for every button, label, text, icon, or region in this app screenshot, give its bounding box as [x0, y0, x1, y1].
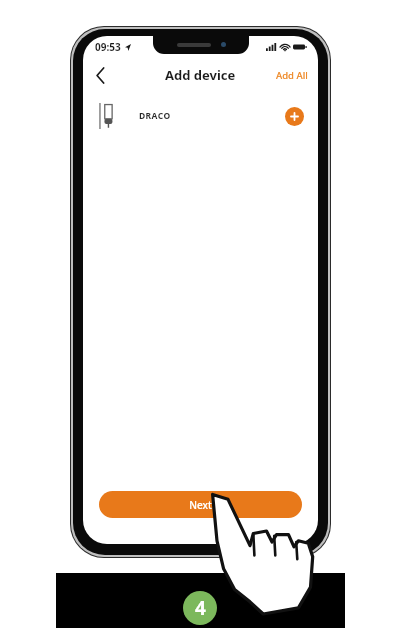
button[interactable]: DRACO — [83, 92, 318, 140]
button[interactable]: Back — [83, 58, 117, 92]
staticText: Next — [189, 498, 212, 512]
staticText: Add device — [165, 66, 236, 84]
staticText: Add All — [276, 69, 308, 82]
button[interactable]: Add DRACO — [285, 107, 304, 126]
staticText: 4 — [195, 595, 206, 621]
button[interactable]: Add All — [266, 63, 318, 88]
staticText: DRACO — [139, 110, 171, 122]
button[interactable]: Next — [99, 491, 302, 518]
staticText: 09:53 — [95, 40, 121, 54]
